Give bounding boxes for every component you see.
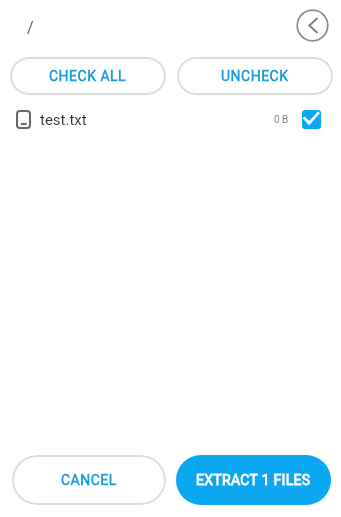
button[interactable]: EXTRACT 1 FILES <box>176 455 331 505</box>
staticText: / <box>27 18 34 37</box>
staticText: CANCEL <box>61 472 117 488</box>
staticText: CHECK ALL <box>49 68 127 84</box>
button[interactable]: CANCEL <box>12 455 166 505</box>
button[interactable]: CHECK ALL <box>10 57 166 95</box>
staticText: UNCHECK <box>221 68 289 84</box>
button[interactable]: UNCHECK <box>177 57 333 95</box>
staticText: test.txt <box>40 111 87 129</box>
button[interactable] <box>296 9 329 42</box>
staticText: EXTRACT 1 FILES <box>196 472 311 488</box>
button[interactable] <box>302 110 321 129</box>
staticText: 0 B <box>274 114 289 126</box>
button[interactable]: test.txt <box>0 103 341 136</box>
